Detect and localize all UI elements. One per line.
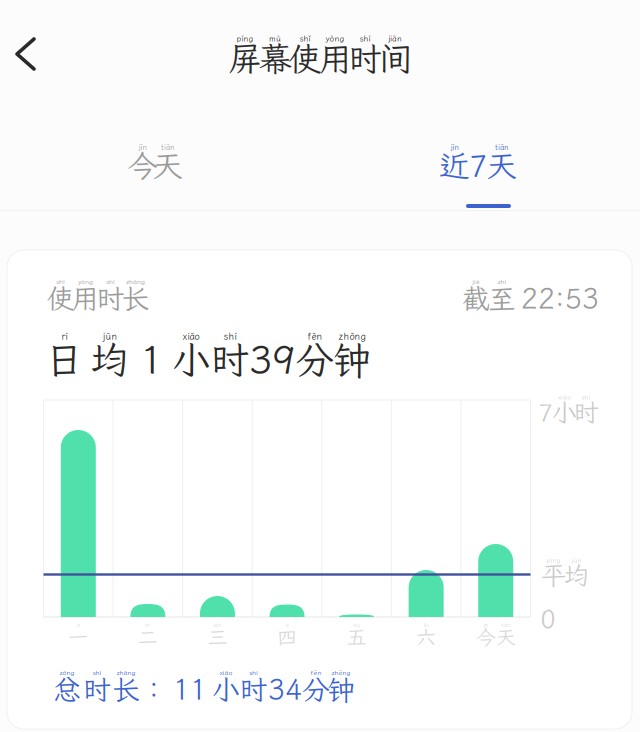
staticText: 三 [207, 624, 227, 650]
staticText: sān [213, 622, 221, 628]
staticText: shǐ [299, 33, 310, 44]
staticText: 长 [121, 280, 149, 317]
staticText: zhōng [331, 668, 350, 677]
staticText: fēn [310, 668, 321, 677]
staticText: 近 [439, 145, 470, 186]
staticText: píng [236, 33, 253, 44]
staticText: 天 [496, 624, 516, 650]
staticText: 用 [318, 36, 351, 80]
staticText: mù [269, 33, 281, 44]
staticText: 今 [476, 624, 496, 650]
staticText: liù [424, 622, 429, 628]
staticText: yī [77, 622, 80, 628]
staticText: jūn [571, 556, 581, 564]
staticText: píng [546, 556, 560, 564]
staticText: 天 [486, 145, 517, 186]
staticText: 日 [45, 334, 84, 385]
staticText: xiǎo [558, 393, 570, 401]
staticText: 时 [83, 671, 111, 708]
staticText: 今 [127, 145, 158, 186]
staticText: 小 [171, 334, 210, 385]
staticText: 平 [541, 558, 566, 592]
staticText: 钟 [327, 671, 355, 708]
staticText: 39 [249, 334, 295, 385]
staticText: 六 [416, 624, 436, 650]
staticText: 时 [210, 334, 249, 385]
staticText: 22:53 [521, 280, 599, 317]
staticText: 时 [96, 280, 124, 317]
staticText: 总 [53, 671, 81, 708]
staticText: 四 [277, 624, 297, 650]
staticText: 钟 [332, 334, 371, 385]
button[interactable]: jìn [318, 126, 638, 202]
staticText: 1 [140, 334, 163, 385]
staticText: 11 [173, 671, 207, 708]
staticText: tiān [161, 142, 174, 152]
staticText: 小 [212, 671, 240, 708]
staticText: 幕 [258, 36, 291, 80]
staticText: shí [106, 277, 115, 286]
staticText: èr [145, 622, 150, 628]
staticText: jìn [450, 142, 458, 152]
staticText: 截 [462, 280, 490, 317]
staticText: 一 [68, 624, 88, 650]
staticText: rì [61, 330, 67, 342]
staticText: wǔ [353, 622, 360, 628]
staticText: 时 [239, 671, 267, 708]
staticText: jūn [102, 330, 117, 342]
staticText: 均 [564, 558, 589, 592]
staticText: 五 [347, 624, 367, 650]
staticText: fēn [307, 330, 322, 342]
staticText: xiǎo [219, 668, 232, 677]
staticText: 屏 [228, 36, 261, 80]
staticText: 天 [152, 145, 183, 186]
staticText: shí [581, 393, 590, 401]
staticText: 小 [551, 395, 576, 429]
staticText: 使 [288, 36, 321, 80]
staticText: zhì [497, 277, 506, 286]
staticText: yòng [78, 277, 93, 286]
staticText: jīn [138, 142, 146, 152]
button[interactable]: jīn [0, 126, 315, 202]
staticText: 长 [112, 671, 140, 708]
staticText: 34 [268, 671, 302, 708]
staticText: 至 [488, 280, 516, 317]
staticText: jiān [388, 33, 402, 44]
staticText: 时 [573, 395, 598, 429]
staticText: 用 [71, 280, 99, 317]
staticText: 分 [295, 334, 334, 385]
staticText: shí [249, 668, 258, 677]
staticText: shí [92, 668, 101, 677]
staticText: 均 [90, 334, 129, 385]
staticText: tiān [501, 622, 510, 628]
staticText: ： [140, 671, 168, 708]
staticText: jié [472, 277, 480, 286]
staticText: 时 [348, 36, 381, 80]
staticText: zhōng [338, 330, 365, 342]
staticText: 使 [46, 280, 74, 317]
staticText: 分 [302, 671, 330, 708]
staticText: tiān [495, 142, 508, 152]
staticText: sì [285, 622, 288, 628]
staticText: zhǎng [116, 668, 135, 677]
button[interactable]: Back [0, 28, 52, 80]
staticText: shǐ [56, 277, 65, 286]
staticText: 二 [138, 624, 158, 650]
staticText: shí [359, 33, 370, 44]
staticText: zǒng [59, 668, 74, 677]
staticText: jīn [483, 622, 488, 628]
staticText: 间 [378, 36, 411, 80]
staticText: 7 [469, 145, 487, 186]
staticText: yòng [325, 33, 344, 44]
staticText: 7 [538, 395, 553, 429]
staticText: xiǎo [182, 330, 199, 342]
staticText: 0 [540, 601, 556, 636]
